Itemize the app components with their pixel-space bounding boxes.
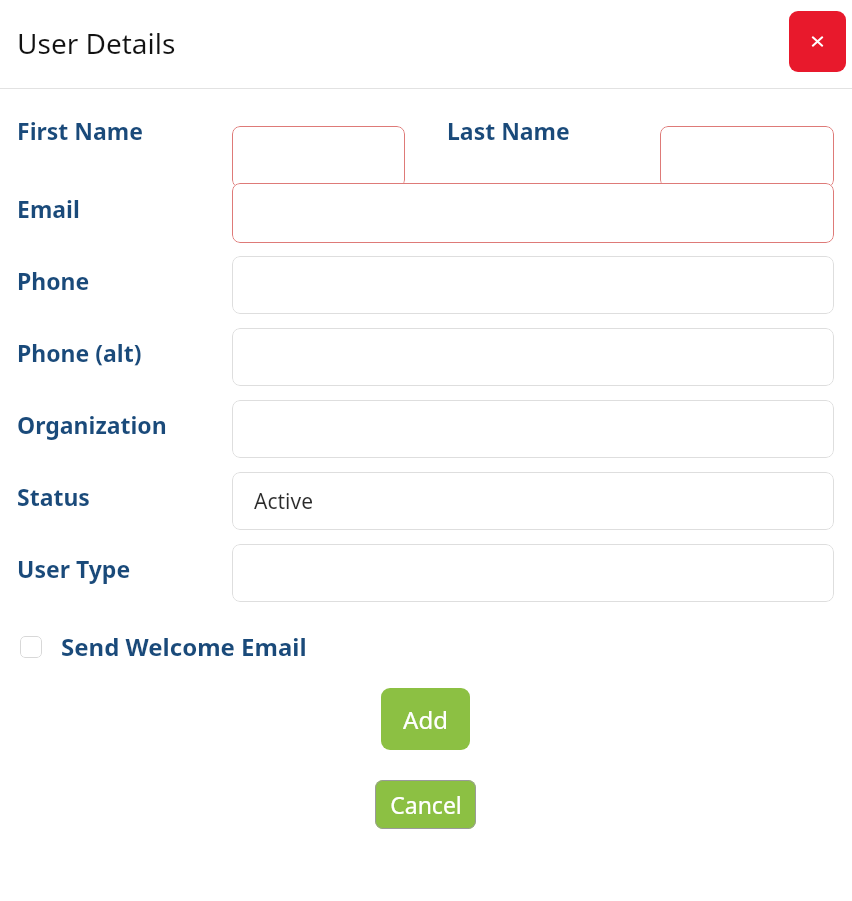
button[interactable]: Close [789,11,846,72]
staticText: Status [17,481,90,512]
button[interactable] [232,544,834,602]
staticText: Email [17,193,80,224]
button[interactable] [232,400,834,458]
staticText: Organization [17,409,167,440]
button[interactable]: Send Welcome Email [20,630,307,663]
staticText: First Name [17,115,143,146]
button[interactable]: Active [232,472,834,530]
staticText: Send Welcome Email [61,630,307,663]
staticText: Add [403,703,448,736]
button[interactable]: Cancel [375,780,476,829]
staticText: Last Name [447,115,570,146]
staticText: User Type [17,553,131,584]
button[interactable] [232,256,834,314]
staticText: User Details [17,24,176,62]
button[interactable] [232,126,405,188]
button[interactable]: Add [381,688,470,750]
button[interactable] [232,183,834,243]
staticText: Cancel [390,789,462,820]
staticText: Phone (alt) [17,337,142,368]
button[interactable] [660,126,834,188]
button[interactable] [232,328,834,386]
staticText: Active [254,487,314,516]
staticText: Phone [17,265,90,296]
